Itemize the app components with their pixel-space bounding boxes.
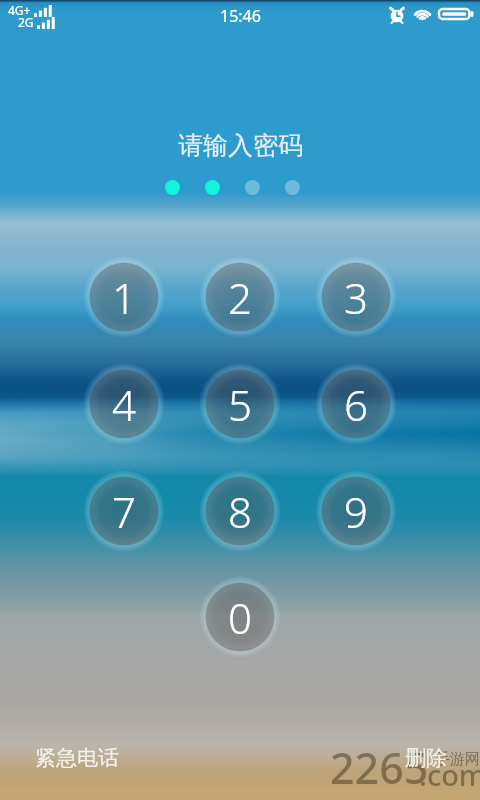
button[interactable]: 3	[315, 256, 397, 338]
button[interactable]: 紧急电话	[35, 745, 119, 771]
staticText: .com	[419, 755, 480, 794]
button[interactable]: 2	[199, 256, 281, 338]
staticText: 删除	[405, 745, 447, 771]
staticText: 9	[344, 483, 368, 540]
staticText: 3	[344, 269, 368, 326]
button[interactable]: 1	[83, 256, 165, 338]
staticText: 手游网	[435, 750, 480, 769]
button[interactable]: 删除	[405, 745, 447, 771]
other: Wi-Fi	[413, 8, 432, 21]
button[interactable]: 9	[315, 470, 397, 552]
staticText: 2265	[330, 738, 429, 797]
staticText: 6	[344, 376, 368, 433]
button[interactable]: 8	[199, 470, 281, 552]
staticText: 0	[228, 589, 252, 646]
staticText: 4G+	[8, 2, 31, 18]
staticText: 请输入密码	[178, 130, 303, 161]
staticText: 4	[112, 376, 136, 433]
staticText: 紧急电话	[35, 745, 119, 771]
button[interactable]: 5	[199, 363, 281, 445]
staticText: 1	[112, 269, 136, 326]
other: Alarm	[390, 7, 404, 22]
staticText: 15:46	[220, 5, 261, 27]
staticText: 8	[228, 483, 252, 540]
staticText: 5	[228, 376, 252, 433]
staticText: 7	[112, 483, 136, 540]
other: Battery	[438, 8, 474, 20]
button[interactable]: 4	[83, 363, 165, 445]
staticText: 2	[228, 269, 252, 326]
staticText: 2G	[18, 14, 34, 30]
button[interactable]: 6	[315, 363, 397, 445]
button[interactable]: 7	[83, 470, 165, 552]
button[interactable]: 0	[199, 576, 281, 658]
